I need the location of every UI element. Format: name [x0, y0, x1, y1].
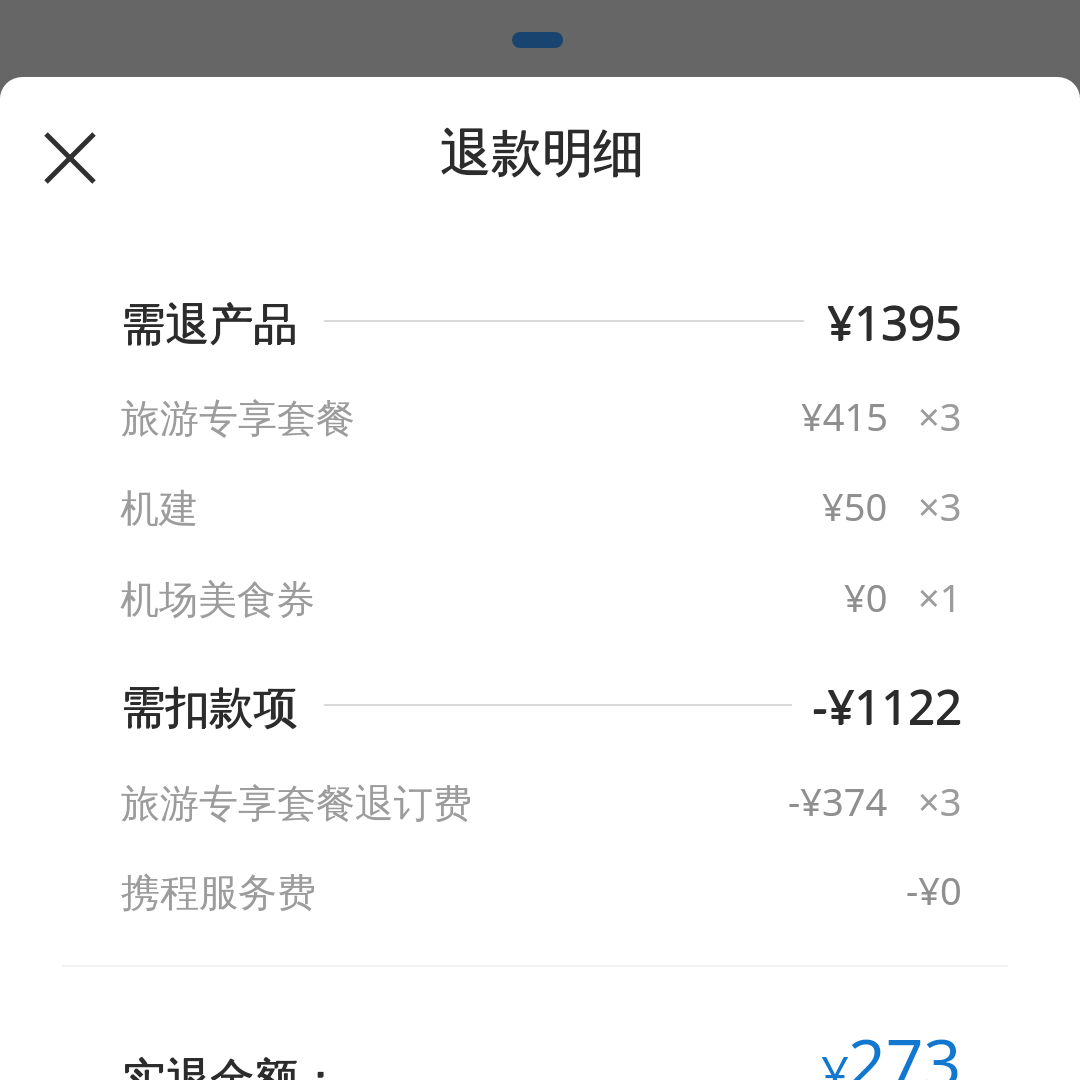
staticText: ¥1395: [827, 291, 962, 355]
staticText: 实退金额：: [122, 1053, 342, 1080]
staticText: ×3: [918, 480, 962, 532]
staticText: -¥1122: [812, 675, 962, 739]
staticText: 旅游专享套餐: [121, 394, 355, 443]
staticText: ¥: [821, 1040, 850, 1080]
button[interactable]: Dismiss: [0, 0, 1080, 77]
staticText: 机建: [120, 484, 198, 533]
staticText: 273: [848, 1016, 962, 1080]
staticText: 机场美食券: [120, 575, 315, 624]
staticText: ¥415: [801, 390, 888, 442]
staticText: 实退金额：: [122, 1052, 342, 1080]
button[interactable]: Close: [30, 118, 110, 198]
staticText: 旅游专享套餐退订费: [121, 779, 472, 828]
staticText: -¥1122: [812, 674, 962, 738]
staticText: 需扣款项: [122, 680, 298, 735]
staticText: 需退产品: [121, 297, 297, 352]
staticText: 需退产品: [121, 298, 297, 353]
staticText: -¥374: [788, 775, 888, 827]
staticText: 携程服务费: [121, 868, 316, 917]
staticText: ×3: [918, 390, 962, 442]
staticText: -¥1122: [813, 674, 963, 738]
staticText: ¥0: [844, 571, 888, 623]
staticText: ×1: [918, 571, 962, 623]
staticText: 退款明细: [440, 121, 644, 185]
staticText: 需扣款项: [121, 681, 297, 736]
staticText: ¥1395: [827, 290, 962, 354]
staticText: ¥1395: [828, 290, 963, 354]
staticText: 实退金额：: [123, 1052, 343, 1080]
staticText: 需扣款项: [121, 680, 297, 735]
staticText: 需退产品: [122, 297, 298, 352]
staticText: -¥0: [906, 864, 962, 916]
staticText: 退款明细: [441, 121, 645, 185]
staticText: ¥50: [822, 480, 888, 532]
staticText: ×3: [918, 775, 962, 827]
staticText: 退款明细: [440, 122, 644, 186]
